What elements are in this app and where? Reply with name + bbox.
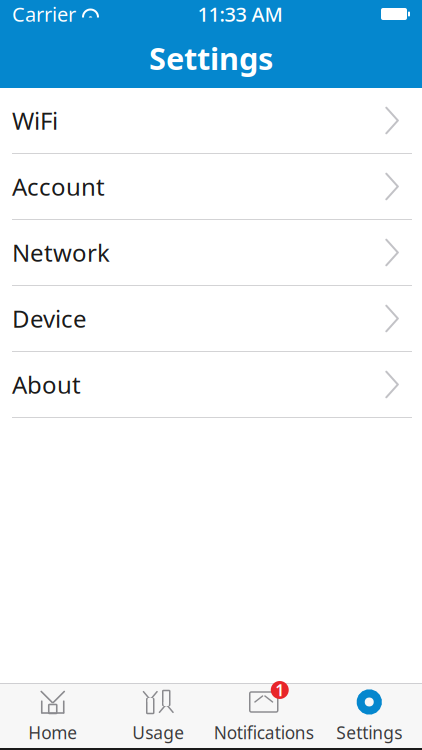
staticText: Settings xyxy=(149,38,273,78)
button[interactable]: Account xyxy=(0,154,422,220)
staticText: Carrier xyxy=(12,1,76,27)
staticText: Usage xyxy=(132,721,184,744)
staticText: WiFi xyxy=(12,105,58,136)
staticText: Home xyxy=(28,721,77,744)
staticText: 11:33 AM xyxy=(197,1,282,27)
button[interactable]: Settings xyxy=(316,684,422,748)
button[interactable]: 1 xyxy=(211,684,316,748)
button[interactable]: About xyxy=(0,352,422,418)
staticText: Settings xyxy=(336,721,402,744)
staticText: About xyxy=(12,369,81,400)
staticText: Device xyxy=(12,303,87,334)
button[interactable]: Network xyxy=(0,220,422,286)
button[interactable]: Device xyxy=(0,286,422,352)
button[interactable]: WiFi xyxy=(0,88,422,154)
staticText: 1 xyxy=(275,679,284,701)
staticText: Notifications xyxy=(214,721,314,744)
staticText: Account xyxy=(12,171,105,202)
staticText: Network xyxy=(12,237,110,268)
button[interactable]: Home xyxy=(0,684,105,748)
button[interactable]: Usage xyxy=(105,684,211,748)
